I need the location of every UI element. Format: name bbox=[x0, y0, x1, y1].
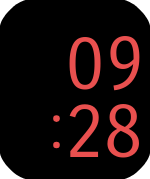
staticText: 28 bbox=[64, 90, 143, 177]
staticText: 09 bbox=[65, 22, 144, 109]
button[interactable]: Clock 09:28 bbox=[0, 0, 150, 179]
